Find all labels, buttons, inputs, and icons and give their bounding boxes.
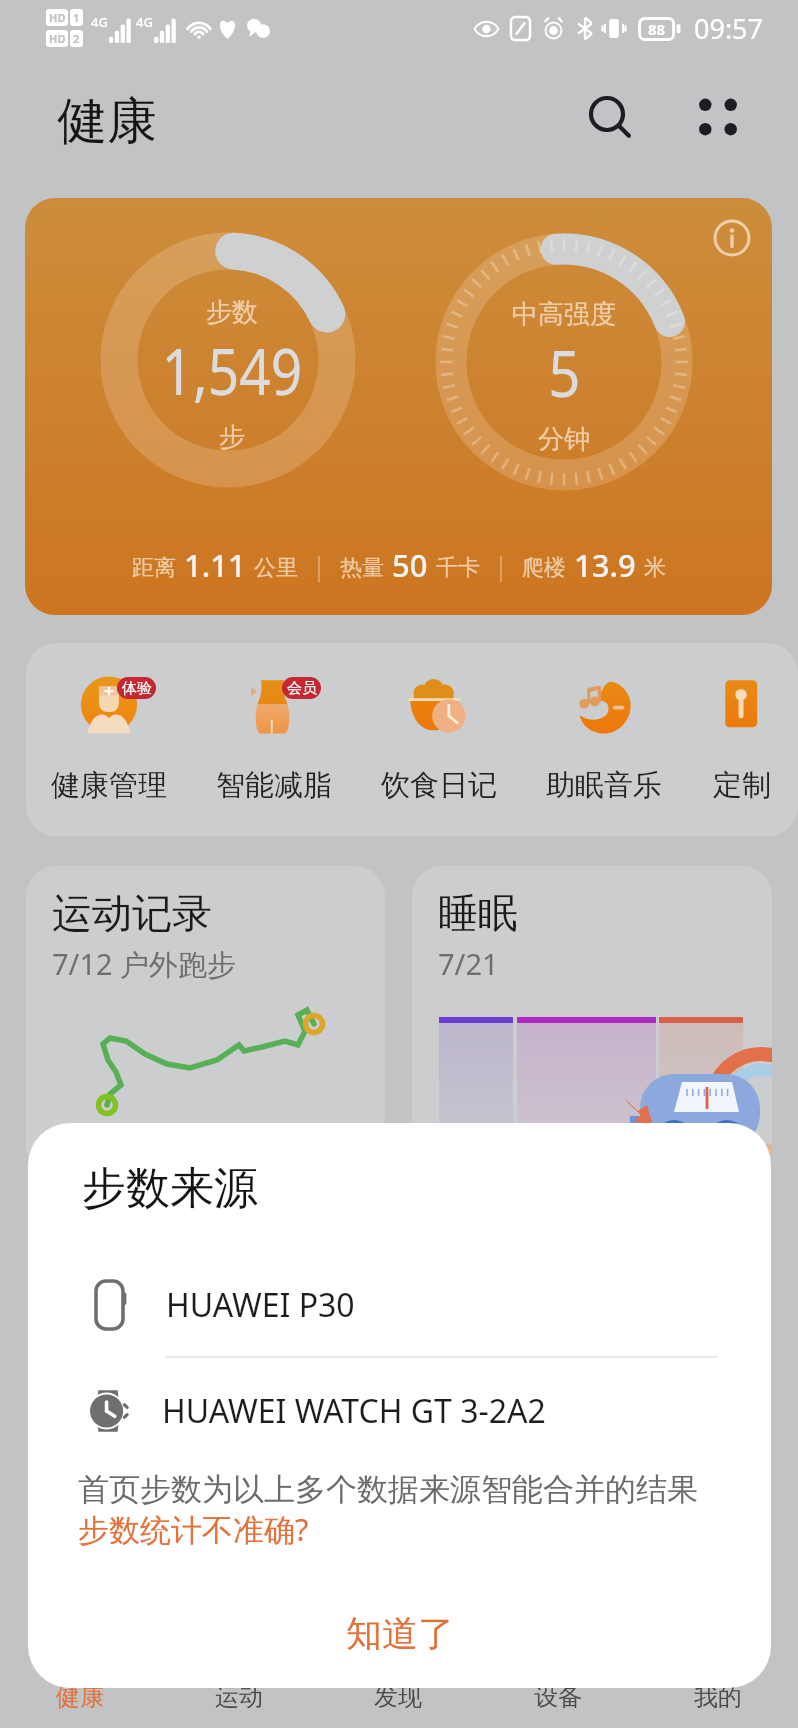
staticText: 饮食日记 — [381, 767, 497, 804]
button[interactable]: 饮食日记 — [356, 665, 521, 804]
staticText: HUAWEI P30 — [166, 1283, 355, 1327]
button[interactable]: HUAWEI P30 — [28, 1269, 771, 1341]
staticText: 知道了 — [346, 1611, 454, 1656]
button[interactable]: 发现 — [318, 1682, 478, 1728]
button[interactable]: HUAWEI WATCH GT 3-2A2 — [28, 1375, 771, 1447]
staticText: 7/21 — [438, 944, 499, 983]
staticText: HUAWEI WATCH GT 3-2A2 — [162, 1389, 546, 1433]
staticText: 设备 — [534, 1682, 582, 1712]
button[interactable]: 会员 — [191, 665, 356, 804]
staticText: 步数来源 — [82, 1161, 258, 1216]
staticText: 50 — [392, 544, 428, 586]
staticText: 13.9 — [574, 544, 636, 586]
button[interactable]: 设备 — [478, 1682, 638, 1728]
staticText: 公里 — [254, 554, 298, 582]
staticText: 5 — [548, 329, 581, 416]
staticText: 爬楼 — [522, 554, 566, 582]
staticText: 会员 — [287, 679, 317, 698]
staticText: 4G — [91, 13, 108, 31]
staticText: 米 — [644, 554, 666, 582]
button[interactable]: 助眠音乐 — [521, 665, 686, 804]
staticText: 分钟 — [538, 423, 590, 456]
button[interactable]: 我的 — [638, 1682, 798, 1728]
button[interactable]: 知道了 — [28, 1578, 771, 1688]
staticText: 1,549 — [161, 327, 302, 414]
staticText: 健康 — [56, 1682, 104, 1712]
staticText: 1.11 — [184, 544, 246, 586]
staticText: 发现 — [374, 1682, 422, 1712]
button[interactable]: 步数统计不准确? — [78, 1508, 309, 1550]
staticText: 运动 — [215, 1682, 263, 1712]
staticText: 定制 — [713, 767, 771, 804]
staticText: 智能减脂 — [216, 767, 332, 804]
staticText: 首页步数为以上多个数据来源智能合并的结果 — [78, 1470, 698, 1509]
staticText: 健康管理 — [51, 767, 167, 804]
staticText: 运动记录 — [52, 888, 212, 938]
staticText: 千卡 — [436, 554, 480, 582]
staticText: 中高强度 — [512, 298, 616, 331]
button[interactable]: 运动 — [159, 1682, 318, 1728]
staticText: HD — [49, 31, 66, 46]
staticText: 09:57 — [694, 10, 764, 47]
button[interactable]: 健康 — [0, 1682, 159, 1728]
button[interactable]: Info — [706, 212, 758, 264]
staticText: HD — [49, 10, 66, 25]
staticText: 距离 — [132, 554, 176, 582]
staticText: 热量 — [340, 554, 384, 582]
staticText: 我的 — [694, 1682, 742, 1712]
staticText: 体验 — [122, 679, 152, 698]
button[interactable]: More options — [679, 78, 757, 156]
staticText: 步 — [219, 421, 245, 454]
button[interactable]: 睡眠 — [412, 866, 772, 1176]
staticText: 睡眠 — [438, 888, 518, 938]
staticText: 助眠音乐 — [546, 767, 662, 804]
button[interactable]: 运动记录 — [26, 866, 385, 1176]
button[interactable]: 定制 — [686, 665, 798, 804]
button[interactable]: Search — [570, 77, 648, 155]
staticText: 88 — [648, 19, 666, 39]
staticText: 健康 — [57, 90, 157, 153]
staticText: 步数 — [206, 296, 258, 329]
button[interactable]: 体验 — [26, 665, 191, 804]
staticText: 7/12 户外跑步 — [52, 944, 237, 984]
staticText: 1 — [73, 10, 80, 25]
staticText: 4G — [136, 13, 153, 31]
button[interactable]: Info — [25, 198, 772, 615]
staticText: 2 — [73, 31, 80, 46]
